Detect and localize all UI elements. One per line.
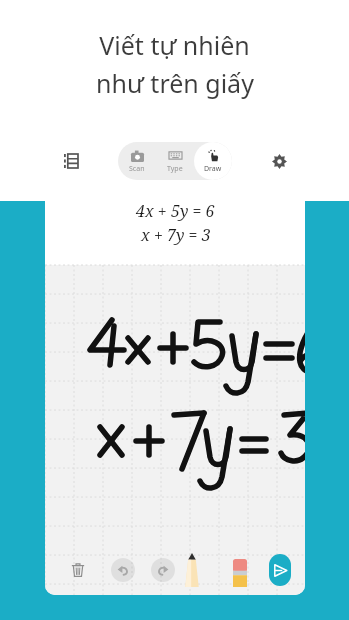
button[interactable]: Delete [63,555,93,585]
staticText: như trên giấy [96,66,254,100]
button[interactable]: Scan [118,142,156,180]
staticText: Draw [204,164,222,174]
button[interactable]: History [57,147,85,175]
staticText: Scan [129,164,145,174]
button[interactable]: Type [156,142,194,180]
button[interactable]: Send [269,554,291,586]
button[interactable]: Eraser [223,553,257,587]
button[interactable]: Undo [111,558,135,582]
staticText: x + 7y = 3 [141,224,211,246]
staticText: Viết tự nhiên [99,28,250,62]
button[interactable]: Settings [265,147,293,175]
button[interactable]: Draw [194,142,232,180]
button[interactable]: Pencil [175,553,209,587]
staticText: 4x + 5y = 6 [136,200,215,222]
staticText: Type [167,164,183,174]
button[interactable]: Redo [151,558,175,582]
